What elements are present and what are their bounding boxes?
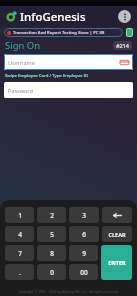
staticText: Copyright © 1987 - 2023 by Agilysys NV, … [5,289,132,294]
button[interactable]: 00 [69,264,98,280]
button[interactable]: 9 [69,245,98,261]
staticText: InfoGenesis [20,9,86,25]
button[interactable]: Connection status [126,28,133,37]
staticText: 3 [82,211,86,220]
button[interactable]: Transaction And Report Testing Store | P… [7,28,120,37]
button[interactable]: 3 [69,207,99,223]
staticText: CLEAR [108,231,126,238]
staticText: 2 [50,211,54,220]
staticText: 0 [50,268,54,277]
staticText: Password [8,87,33,94]
staticText: Swipe Employee Card / Type Employee ID [5,72,89,78]
other: Scan badge [120,59,129,66]
button[interactable]: 5 [37,226,66,242]
button[interactable]: 4 [5,226,34,242]
button[interactable]: CLEAR [102,226,132,242]
staticText: 00 [80,268,88,277]
staticText: #214 [116,42,129,49]
button[interactable]: #214 [116,42,129,49]
button[interactable]: 7 [5,245,34,261]
button[interactable]: Password [8,82,129,98]
staticText: Username [8,59,35,66]
staticText: 8 [50,249,54,258]
button[interactable]: . [5,264,34,280]
button[interactable]: Username [8,54,129,70]
staticText: 7 [18,249,22,258]
staticText: . [19,268,21,277]
staticText: 6 [82,230,86,239]
button[interactable]: 2 [37,207,66,223]
staticText: 4 [18,230,22,239]
button[interactable]: 1 [5,207,34,223]
button[interactable]: More options [118,10,131,23]
staticText: ENTER [108,259,126,266]
button[interactable]: ENTER [101,245,132,280]
button[interactable]: 8 [37,245,66,261]
staticText: 9 [82,249,86,258]
staticText: Sign On [5,39,41,52]
button[interactable]: Backspace [102,207,132,223]
staticText: 5 [50,230,54,239]
button[interactable]: 0 [37,264,66,280]
button[interactable]: 6 [69,226,99,242]
staticText: Transaction And Report Testing Store | P… [13,30,105,36]
staticText: 1 [18,211,22,220]
